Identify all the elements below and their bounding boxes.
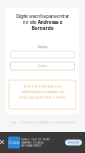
button[interactable]: Fechar	[0, 132, 8, 153]
staticText: iCasei. O melhor site de casamento e lis…	[9, 121, 75, 124]
staticText: Senha	[37, 45, 47, 49]
staticText: Digite a senha para entrar no site Andre…	[16, 14, 69, 31]
staticText: Baixe o App do nosso casamento e busque …	[21, 138, 50, 147]
button[interactable]: Entrar	[10, 62, 74, 70]
button[interactable]: BAIXAR	[65, 139, 82, 145]
staticText: Este site é privado e as informações só …	[18, 84, 66, 99]
staticText: iCasei	[8, 140, 19, 145]
staticText: BAIXAR	[68, 141, 79, 144]
staticText: Entrar	[38, 64, 47, 68]
